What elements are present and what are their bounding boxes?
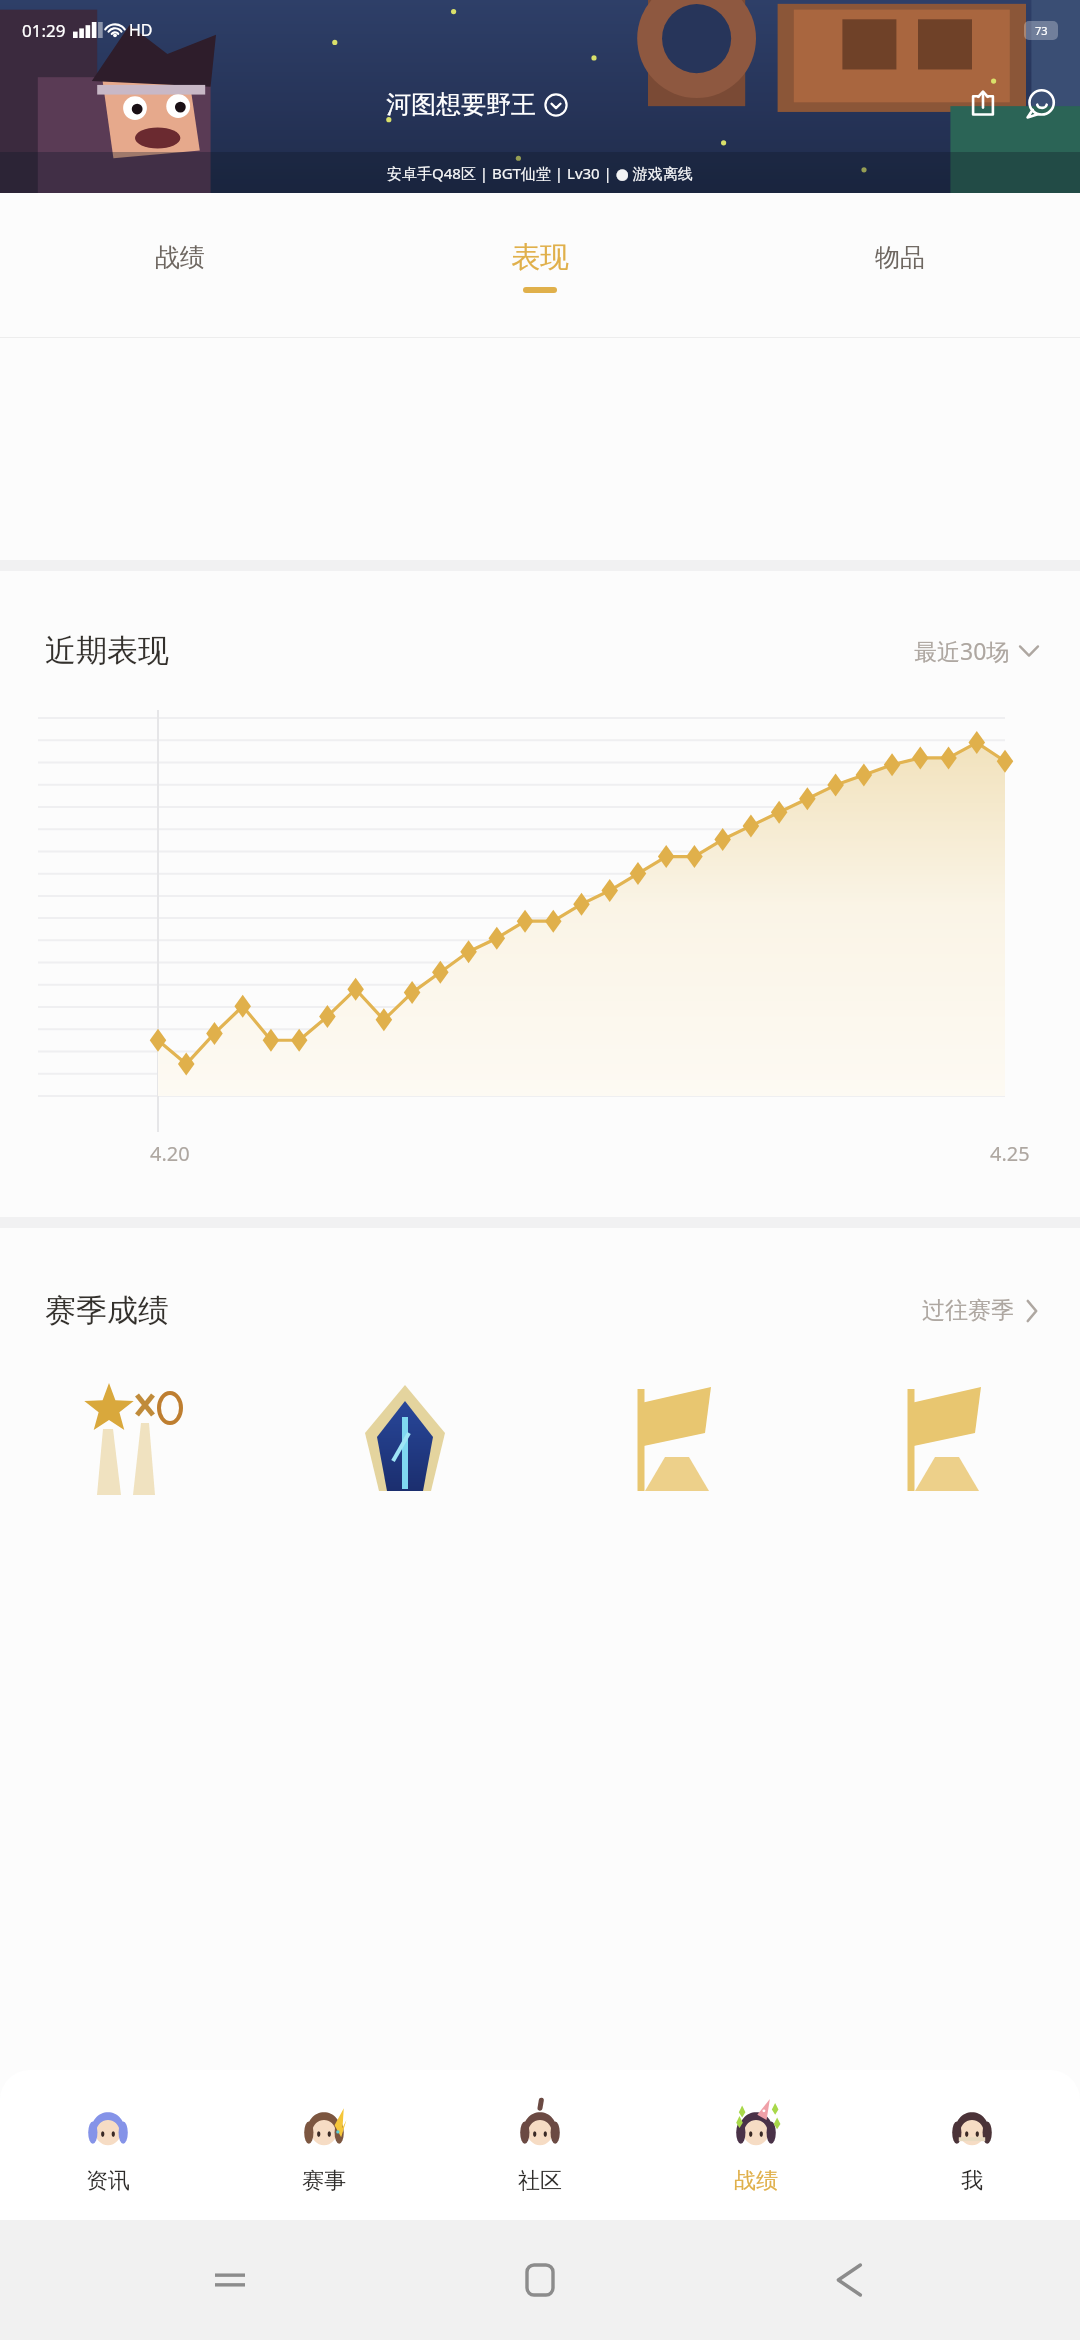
button[interactable]: Share: [954, 75, 1012, 133]
staticText: 河图想要野王: [386, 89, 536, 120]
button[interactable]: [270, 1371, 540, 1491]
button[interactable]: Home: [510, 2250, 570, 2310]
button[interactable]: 表现: [360, 193, 720, 338]
button[interactable]: 物品: [720, 193, 1080, 338]
button[interactable]: Recents: [200, 2250, 260, 2310]
button[interactable]: Back: [820, 2250, 880, 2310]
staticText: 73: [1035, 23, 1048, 38]
button[interactable]: 社区: [432, 2070, 648, 2220]
button[interactable]: [810, 1371, 1080, 1491]
staticText: 4.20: [150, 1140, 190, 1167]
button[interactable]: 最近30场: [908, 629, 1044, 672]
button[interactable]: 赛事: [216, 2070, 432, 2220]
button[interactable]: 资讯: [0, 2070, 216, 2220]
button[interactable]: Messages: [1012, 75, 1070, 133]
button[interactable]: 战绩: [648, 2070, 864, 2220]
staticText: 战绩: [734, 2167, 778, 2195]
staticText: 社区: [518, 2167, 562, 2195]
staticText: 4.25: [990, 1140, 1030, 1167]
button[interactable]: 我: [864, 2070, 1080, 2220]
staticText: 近期表现: [45, 631, 169, 670]
staticText: 资讯: [86, 2167, 130, 2195]
staticText: 战绩: [155, 242, 205, 273]
button[interactable]: [540, 1371, 810, 1491]
staticText: 我: [961, 2167, 983, 2195]
button[interactable]: 战绩: [0, 193, 360, 338]
staticText: 表现: [511, 239, 569, 276]
button[interactable]: [0, 1371, 270, 1491]
staticText: 安卓手Q48区 | BGT仙堂 | Lv30 | ● 游戏离线: [387, 163, 693, 183]
staticText: 赛事: [302, 2167, 346, 2195]
button[interactable]: 河图想要野王: [382, 85, 572, 124]
staticText: 过往赛季: [922, 1296, 1014, 1325]
button[interactable]: 过往赛季: [916, 1290, 1044, 1331]
staticText: 01:29: [22, 19, 66, 42]
staticText: 赛季成绩: [45, 1291, 169, 1330]
staticText: 物品: [875, 242, 925, 273]
staticText: 最近30场: [914, 635, 1010, 666]
staticText: HD: [129, 19, 153, 41]
